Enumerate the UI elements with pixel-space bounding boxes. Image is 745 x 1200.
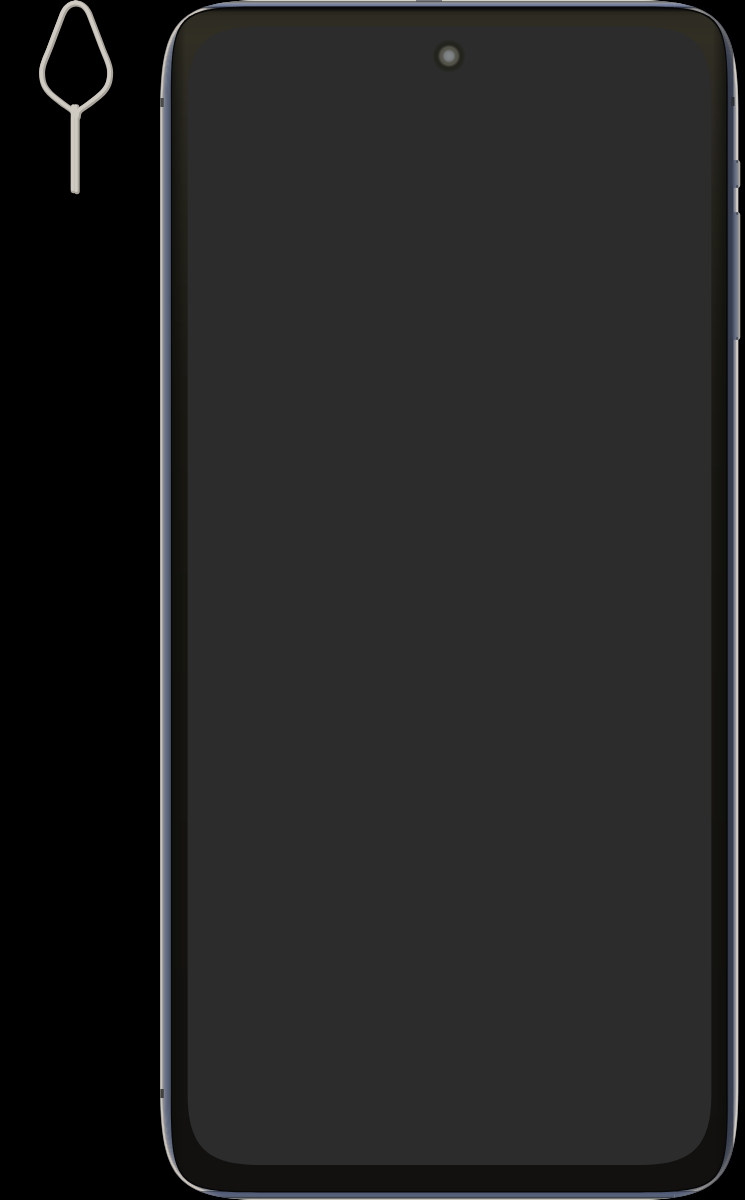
button[interactable]: Volume rocker: [726, 208, 742, 344]
button[interactable]: Power button: [726, 156, 742, 192]
button[interactable]: SIM card eject tool: [36, 0, 118, 196]
button[interactable]: Smartphone front view: [160, 0, 739, 1200]
button[interactable]: Front camera: [432, 39, 466, 73]
